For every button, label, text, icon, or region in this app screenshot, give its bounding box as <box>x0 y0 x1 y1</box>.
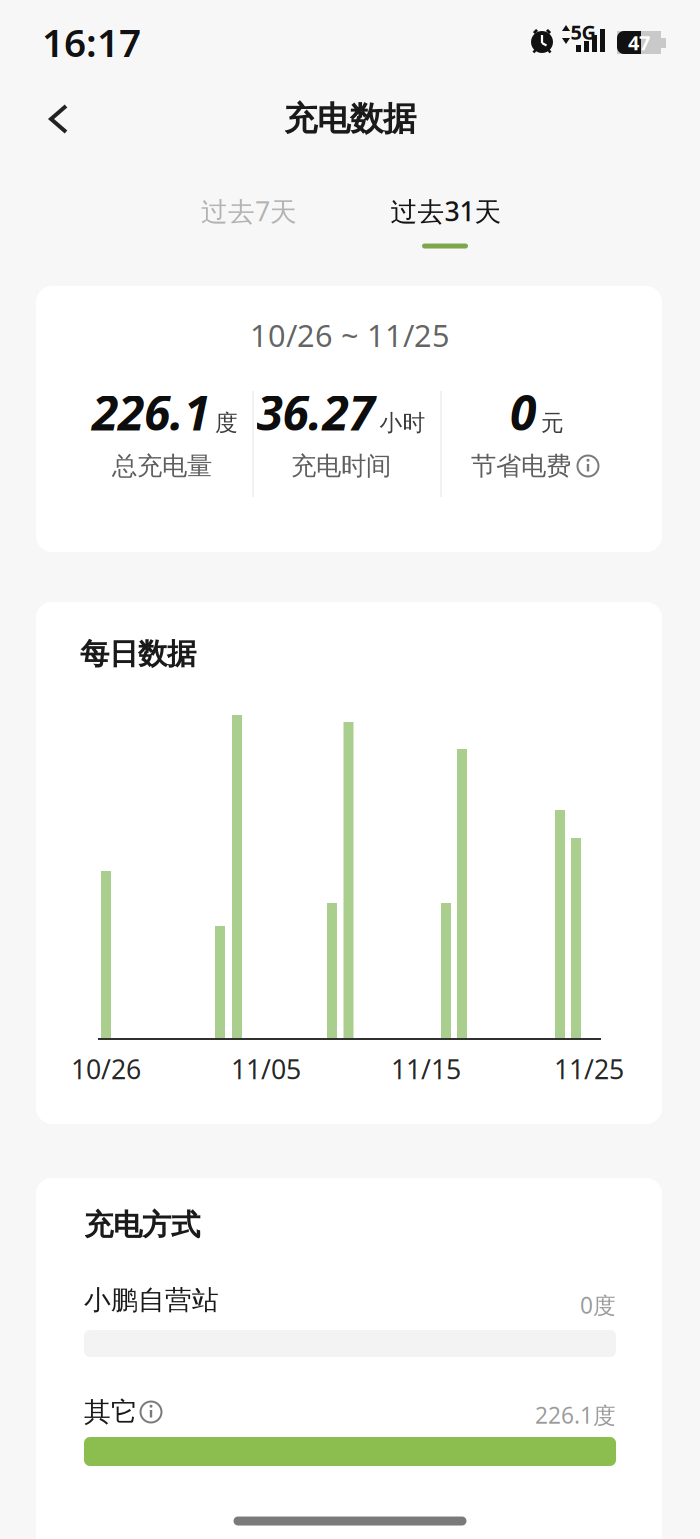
button[interactable]: 过去7天 <box>159 181 339 241</box>
button[interactable]: 过去31天 <box>356 181 536 241</box>
staticText: 元 <box>541 409 564 437</box>
staticText: 其它 <box>84 1396 138 1428</box>
staticText: 16:17 <box>42 16 141 68</box>
staticText: 小鹏自营站 <box>84 1284 219 1316</box>
staticText: 10/26 <box>71 1051 141 1087</box>
staticText: 总充电量 <box>112 450 212 481</box>
staticText: 36.27 <box>256 380 374 444</box>
staticText: 0 <box>510 380 536 444</box>
button[interactable] <box>576 454 600 478</box>
staticText: 5G <box>570 19 595 45</box>
button[interactable] <box>38 99 78 139</box>
staticText: 10/26 ~ 11/25 <box>250 315 450 355</box>
staticText: 每日数据 <box>80 636 196 672</box>
staticText: 充电方式 <box>84 1207 200 1243</box>
staticText: 47 <box>628 29 650 56</box>
button[interactable] <box>139 1400 163 1424</box>
staticText: 充电数据 <box>284 98 416 139</box>
staticText: 11/25 <box>554 1051 624 1087</box>
staticText: 充电时间 <box>291 450 391 481</box>
staticText: 过去7天 <box>201 193 297 229</box>
staticText: 小时 <box>379 409 425 437</box>
staticText: 11/15 <box>391 1051 461 1087</box>
staticText: 度 <box>215 409 238 437</box>
staticText: 226.1 <box>92 380 210 444</box>
staticText: 过去31天 <box>390 193 501 229</box>
staticText: 11/05 <box>231 1051 301 1087</box>
staticText: 节省电费 <box>471 450 571 481</box>
staticText: 226.1度 <box>535 1400 616 1430</box>
staticText: 0度 <box>580 1290 616 1320</box>
